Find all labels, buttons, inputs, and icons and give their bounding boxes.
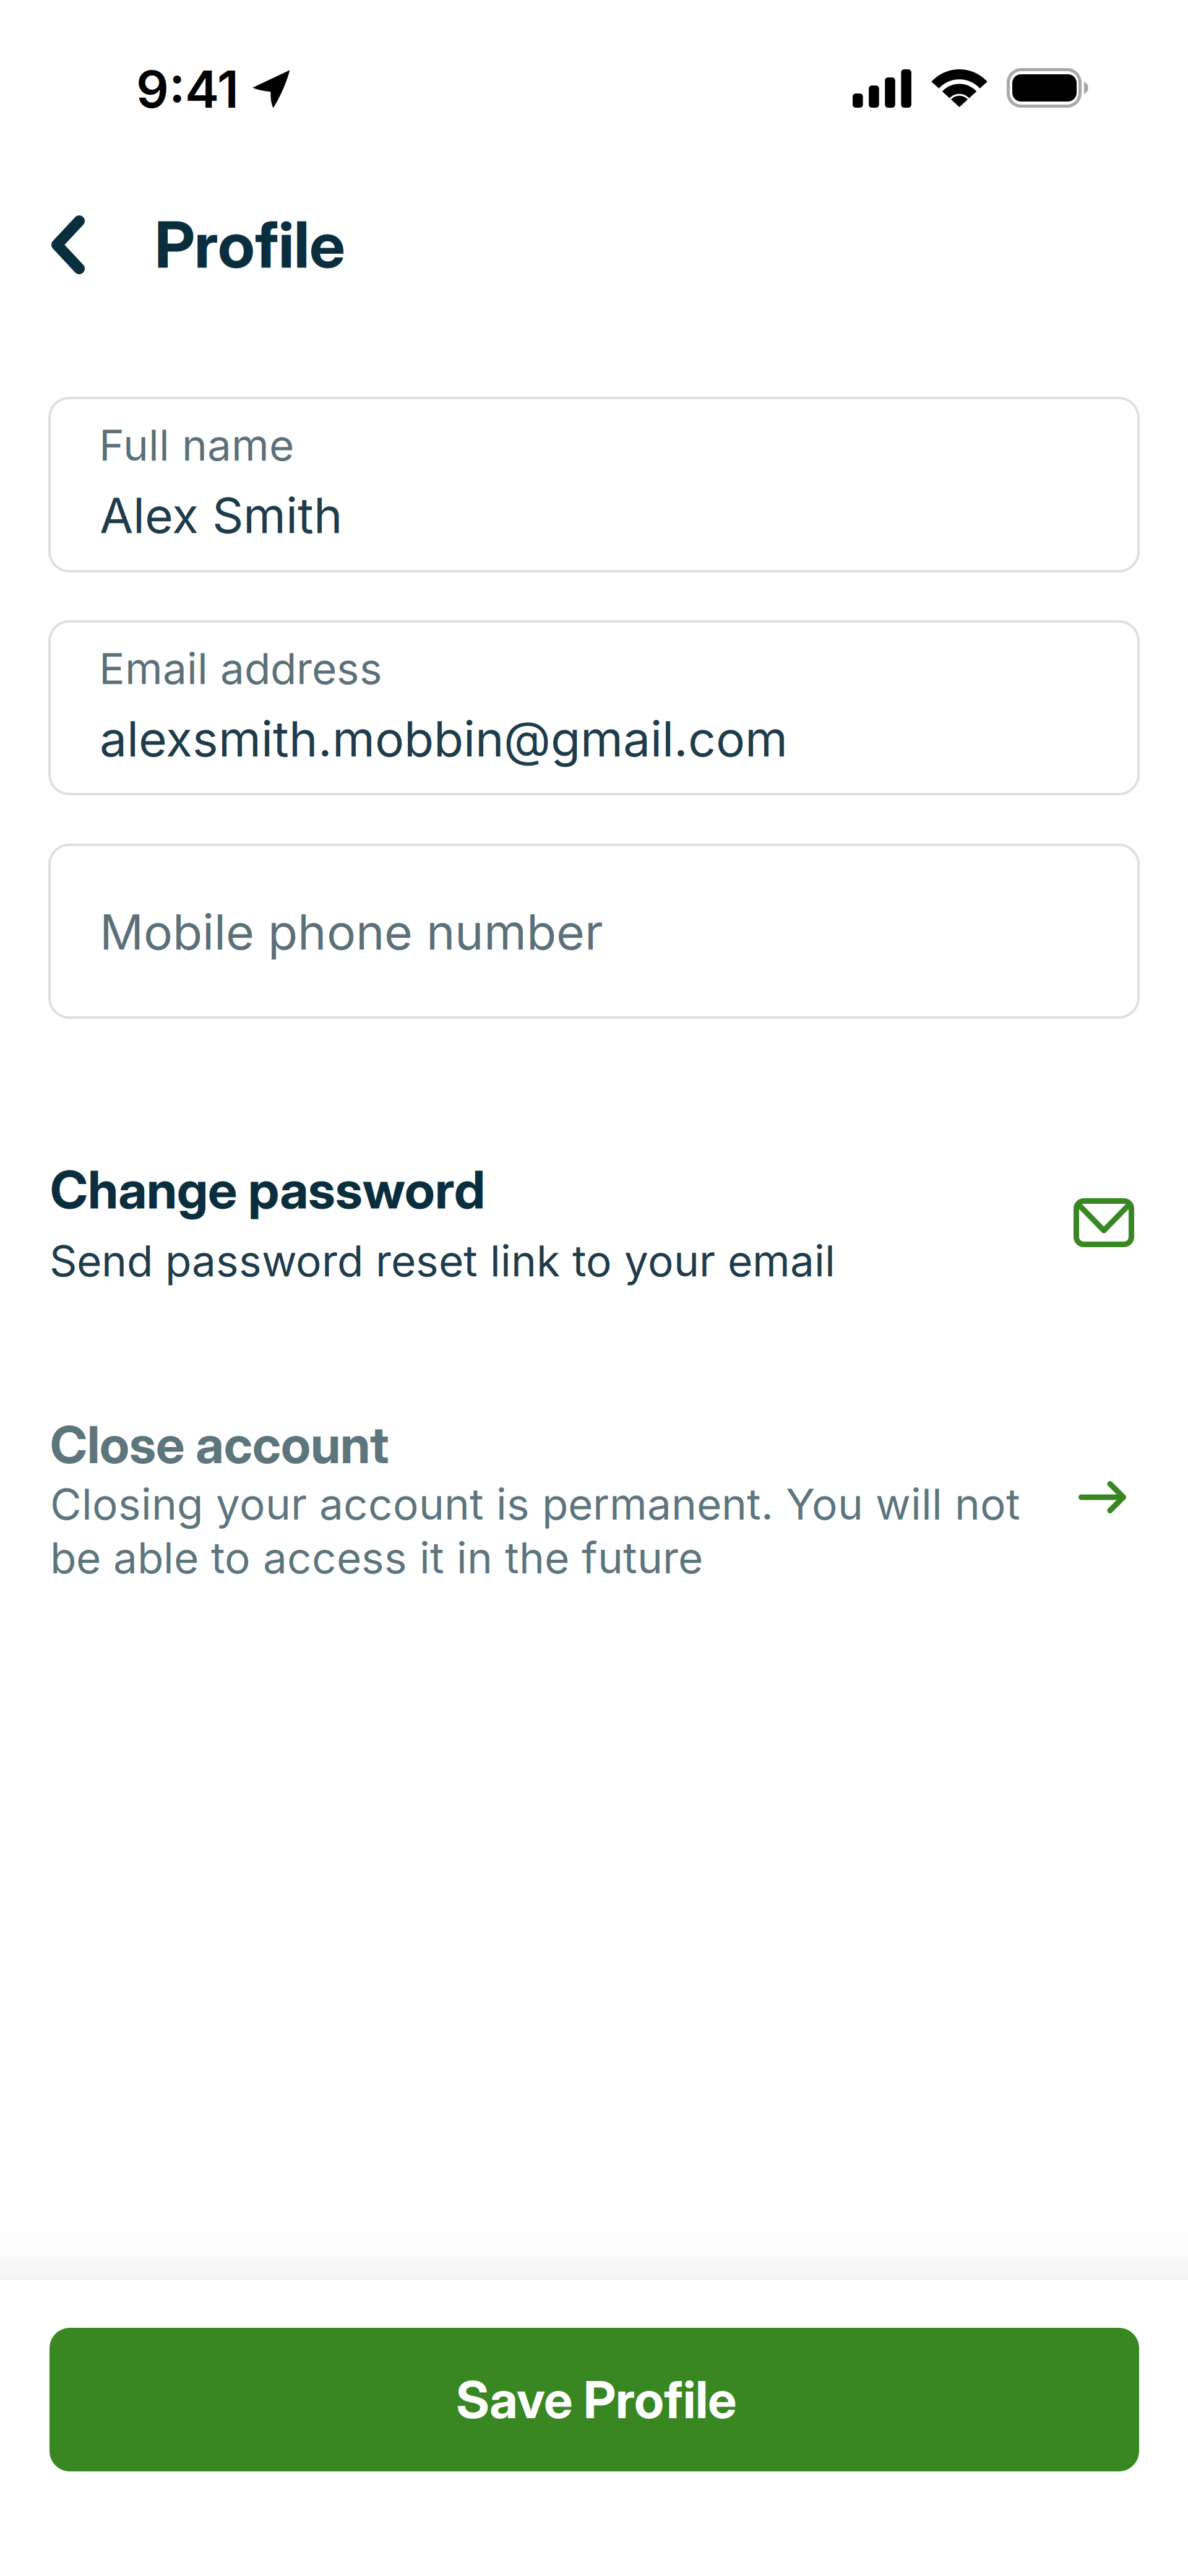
button[interactable]: Close account [50, 1414, 1139, 1568]
button[interactable]: Back [33, 192, 132, 297]
staticText: Email address [99, 642, 382, 694]
staticText: Closing your account is permanent. You w… [50, 1478, 1020, 1584]
staticText: Alex Smith [100, 486, 343, 545]
staticText: Full name [99, 419, 294, 471]
staticText: Mobile phone number [100, 902, 603, 961]
staticText: alexsmith.mobbin@gmail.com [100, 709, 788, 768]
staticText: Send password reset link to your email [49, 1235, 835, 1287]
button[interactable]: Full name [49, 398, 1138, 571]
button[interactable]: Email address [49, 621, 1138, 794]
staticText: 9:41 [136, 58, 239, 120]
button[interactable]: Change password [49, 1158, 1138, 1282]
button[interactable]: Mobile phone number [49, 845, 1138, 1018]
staticText: Change password [50, 1158, 485, 1221]
staticText: Save Profile [456, 2369, 736, 2431]
staticText: Close account [50, 1414, 389, 1476]
button[interactable]: Save Profile [49, 2328, 1139, 2471]
staticText: Profile [155, 206, 345, 283]
